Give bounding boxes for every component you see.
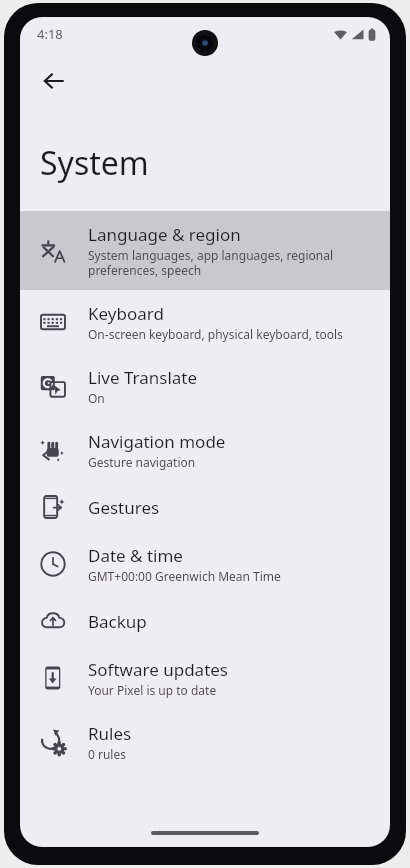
button[interactable]: Gestures	[20, 482, 390, 532]
button[interactable]: Date & time	[20, 532, 390, 596]
button[interactable]: Live Translate	[20, 354, 390, 418]
staticText: Rules	[88, 722, 132, 745]
staticText: Gesture navigation	[88, 454, 196, 470]
staticText: Navigation mode	[88, 430, 226, 453]
staticText: Your Pixel is up to date	[88, 682, 217, 698]
staticText: Software updates	[88, 658, 229, 681]
button[interactable]: Rules	[20, 710, 390, 774]
button[interactable]: Back	[30, 57, 78, 105]
staticText: Keyboard	[88, 302, 164, 325]
button[interactable]: Backup	[20, 596, 390, 646]
staticText: System	[40, 141, 149, 185]
button[interactable]: Keyboard	[20, 290, 390, 354]
staticText: 4:18	[37, 25, 63, 43]
staticText: Live Translate	[88, 366, 198, 389]
staticText: System languages, app languages, regiona…	[88, 247, 333, 278]
staticText: On	[88, 390, 105, 406]
staticText: Gestures	[88, 496, 160, 519]
staticText: 0 rules	[88, 746, 126, 762]
button[interactable]: Navigation mode	[20, 418, 390, 482]
button[interactable]: Language & region	[20, 211, 390, 290]
staticText: Language & region	[88, 223, 241, 246]
staticText: Date & time	[88, 544, 183, 567]
staticText: On-screen keyboard, physical keyboard, t…	[88, 326, 343, 342]
staticText: GMT+00:00 Greenwich Mean Time	[88, 568, 281, 584]
button[interactable]: Software updates	[20, 646, 390, 710]
staticText: Backup	[88, 610, 147, 633]
